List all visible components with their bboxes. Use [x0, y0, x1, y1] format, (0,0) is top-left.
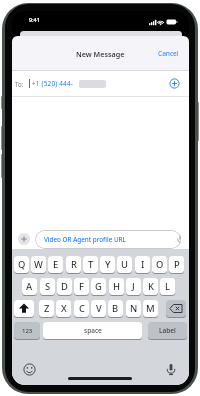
button[interactable] — [14, 300, 34, 317]
button[interactable]: K — [143, 278, 158, 295]
staticText: Y — [105, 258, 111, 271]
staticText: E — [53, 258, 59, 271]
button[interactable]: S — [40, 278, 55, 295]
staticText: I — [141, 258, 145, 271]
staticText: B — [112, 302, 119, 315]
button[interactable]: Cancel — [140, 48, 179, 59]
button[interactable]: A — [22, 278, 37, 295]
button[interactable]: E — [48, 256, 63, 273]
staticText: M — [146, 302, 155, 315]
staticText: O — [156, 258, 164, 271]
staticText: Q — [18, 258, 26, 271]
staticText: L — [165, 280, 171, 293]
staticText: C — [79, 302, 85, 315]
staticText: Cancel — [158, 49, 179, 58]
staticText: N — [130, 302, 138, 315]
button[interactable]: G — [91, 278, 106, 295]
button[interactable]: T — [83, 256, 98, 273]
staticText: G — [95, 280, 102, 293]
button[interactable]: U — [117, 256, 132, 273]
staticText: New Message — [76, 49, 125, 59]
button[interactable]: C — [74, 300, 89, 317]
button[interactable]: V — [91, 300, 106, 317]
staticText: R — [71, 258, 77, 271]
button[interactable]: O — [152, 256, 167, 273]
button[interactable]: space — [43, 322, 142, 339]
button[interactable]: L — [160, 278, 175, 295]
button[interactable]: W — [31, 256, 46, 273]
staticText: +1 (520) 444- — [32, 79, 74, 88]
staticText: 123 — [22, 327, 33, 335]
staticText: J — [132, 280, 135, 293]
button[interactable] — [18, 233, 30, 245]
button[interactable]: Z — [39, 300, 54, 317]
button[interactable]: H — [109, 278, 124, 295]
button[interactable] — [166, 300, 186, 317]
staticText: Z — [44, 302, 50, 315]
button[interactable]: R — [66, 256, 81, 273]
button[interactable]: D — [57, 278, 72, 295]
button[interactable]: 123 — [14, 322, 40, 339]
button[interactable]: Video OR Agent profile URL — [35, 230, 181, 249]
staticText: V — [96, 302, 102, 315]
staticText: space — [84, 326, 102, 335]
staticText: H — [113, 280, 121, 293]
staticText: K — [148, 280, 154, 293]
button[interactable]: F — [74, 278, 89, 295]
button[interactable]: M — [143, 300, 158, 317]
button[interactable]: Q — [14, 256, 29, 273]
staticText: To: — [15, 80, 24, 88]
staticText: Label — [159, 326, 176, 335]
staticText: A — [26, 280, 33, 293]
staticText: Video OR Agent profile URL — [44, 235, 126, 244]
button[interactable]: I — [135, 256, 150, 273]
button[interactable]: P — [169, 256, 184, 273]
staticText: S — [45, 280, 51, 293]
button[interactable]: N — [126, 300, 141, 317]
staticText: 9:41 — [29, 16, 40, 23]
button[interactable]: Y — [100, 256, 115, 273]
staticText: W — [34, 258, 43, 271]
staticText: F — [79, 280, 84, 293]
staticText: D — [61, 280, 68, 293]
button[interactable]: B — [108, 300, 123, 317]
staticText: U — [121, 258, 128, 271]
button[interactable]: J — [126, 278, 141, 295]
staticText: T — [88, 258, 94, 271]
button[interactable]: X — [56, 300, 71, 317]
button[interactable] — [169, 78, 180, 89]
button[interactable]: Label — [148, 322, 187, 339]
staticText: P — [174, 258, 180, 271]
staticText: X — [61, 302, 67, 315]
